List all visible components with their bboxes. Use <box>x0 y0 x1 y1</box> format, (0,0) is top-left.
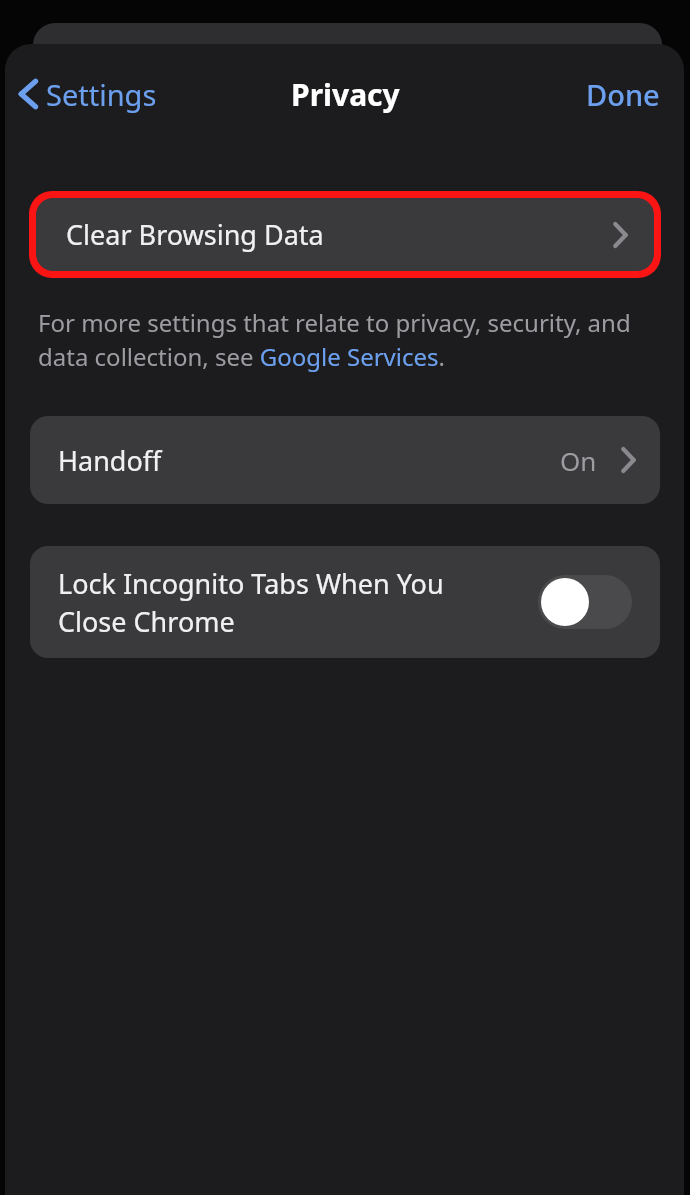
button[interactable]: Clear Browsing Data <box>29 191 661 278</box>
other: Open <box>613 222 628 248</box>
staticText: Clear Browsing Data <box>66 216 324 253</box>
staticText: Done <box>586 75 660 114</box>
button[interactable]: Lock Incognito Tabs When You Close Chrom… <box>538 575 632 629</box>
button[interactable]: Handoff <box>30 416 660 504</box>
staticText: Privacy <box>291 74 400 115</box>
staticText: Handoff <box>58 442 162 479</box>
staticText: On <box>560 443 597 478</box>
staticText: For more settings that relate to privacy… <box>38 306 650 374</box>
button[interactable]: Done <box>572 66 674 122</box>
staticText: Settings <box>46 75 157 114</box>
button[interactable]: Settings <box>8 66 169 122</box>
button[interactable]: Lock Incognito Tabs When You Close Chrom… <box>30 546 660 658</box>
other: Open <box>621 447 636 473</box>
staticText: Lock Incognito Tabs When You Close Chrom… <box>58 565 444 640</box>
